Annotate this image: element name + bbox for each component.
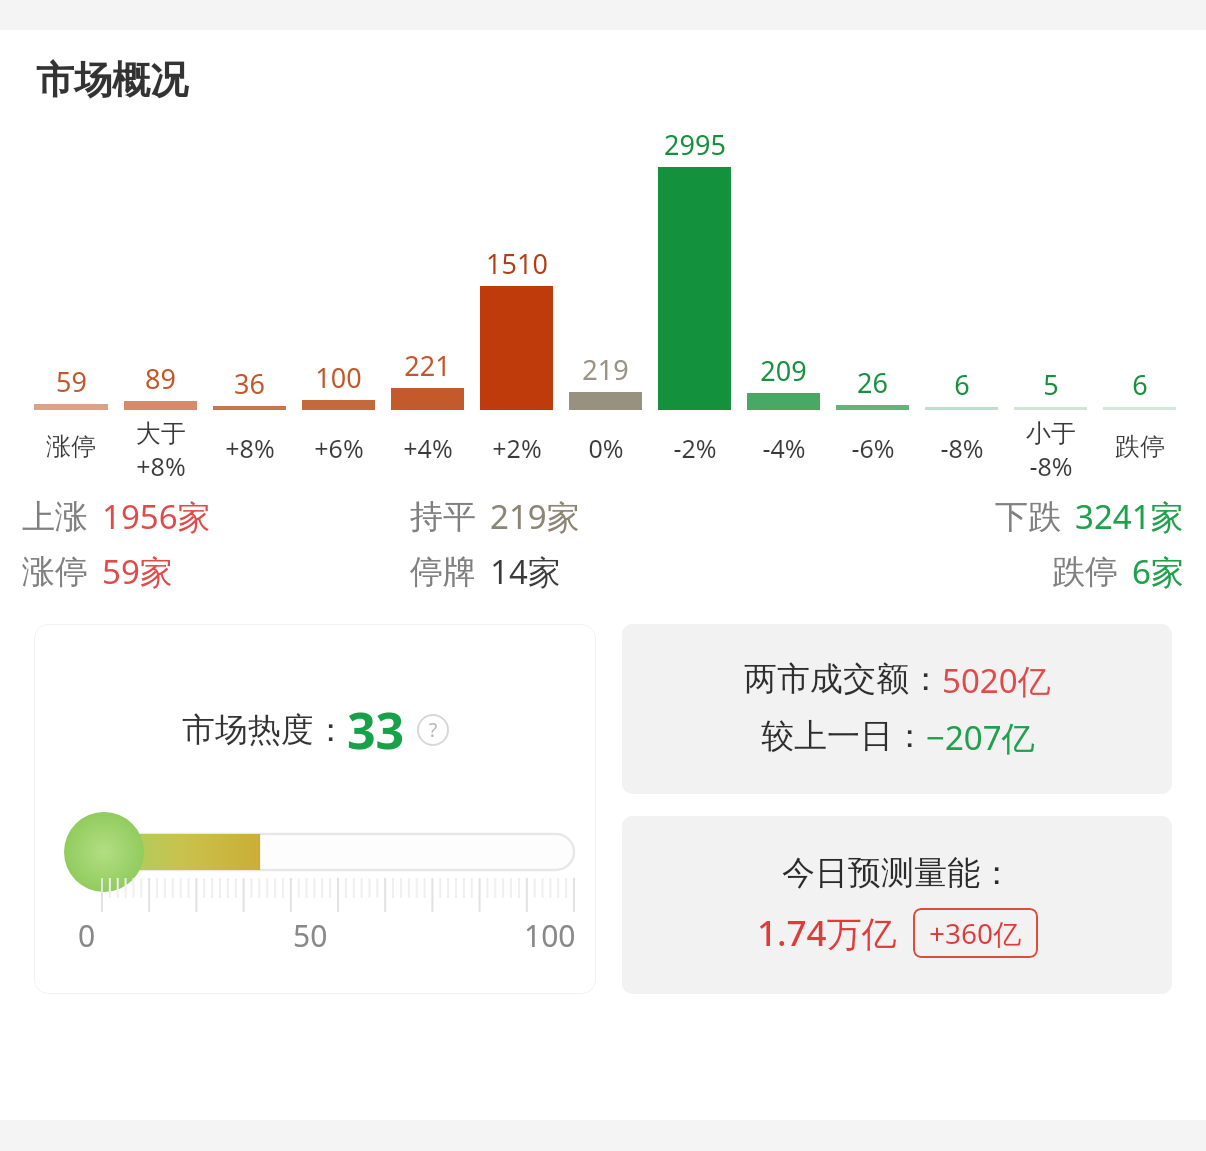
staticText: 0%: [588, 431, 624, 465]
staticText: 219家: [490, 494, 580, 539]
staticText: 5020亿: [942, 658, 1051, 703]
staticText: 5: [1043, 366, 1059, 403]
staticText: +8%: [136, 449, 186, 478]
staticText: 209: [760, 352, 807, 389]
staticText: 持平: [410, 496, 476, 538]
staticText: 6: [954, 366, 970, 403]
button[interactable]: 停牌: [410, 549, 797, 594]
staticText: -6%: [851, 431, 895, 465]
button[interactable]: 下跌: [797, 494, 1184, 539]
staticText: 涨停: [46, 431, 96, 462]
staticText: 221: [404, 347, 451, 384]
staticText: +360亿: [929, 914, 1022, 952]
staticText: 26: [857, 364, 888, 401]
staticText: 今日预测量能：: [782, 852, 1013, 894]
staticText: 59家: [102, 549, 173, 594]
staticText: 3241家: [1075, 494, 1184, 539]
staticText: −207亿: [926, 715, 1035, 760]
staticText: 下跌: [995, 496, 1061, 538]
button[interactable]: 两市成交额：: [622, 624, 1172, 794]
staticText: 33: [347, 696, 405, 764]
button[interactable]: 今日预测量能：: [622, 816, 1172, 994]
staticText: 市场热度：: [182, 709, 347, 751]
staticText: +4%: [403, 431, 453, 465]
staticText: 100: [315, 359, 362, 396]
staticText: 100: [524, 915, 576, 956]
staticText: 89: [145, 360, 176, 397]
staticText: 市场概况: [36, 56, 188, 104]
staticText: +2%: [492, 431, 542, 465]
button[interactable]: 市场热度：: [34, 624, 596, 994]
staticText: +8%: [225, 431, 275, 465]
staticText: 6家: [1132, 549, 1184, 594]
staticText: 大于: [136, 418, 186, 449]
button[interactable]: +360亿: [929, 914, 1022, 952]
button[interactable]: 持平: [410, 494, 797, 539]
staticText: 跌停: [1052, 551, 1118, 593]
staticText: 1510: [486, 245, 548, 282]
button[interactable]: 0: [34, 790, 596, 960]
staticText: 停牌: [410, 551, 476, 593]
staticText: 0: [78, 915, 96, 956]
staticText: 14家: [490, 549, 561, 594]
staticText: 小于: [1026, 418, 1076, 449]
staticText: ?: [429, 717, 438, 743]
button[interactable]: 上涨: [22, 494, 410, 539]
staticText: -8%: [1029, 449, 1073, 478]
staticText: 涨停: [22, 551, 88, 593]
staticText: +6%: [314, 431, 364, 465]
staticText: -8%: [940, 431, 984, 465]
staticText: 较上一日：: [761, 715, 926, 757]
staticText: 50: [293, 915, 328, 956]
staticText: 59: [56, 363, 87, 400]
staticText: 两市成交额：: [744, 658, 942, 700]
staticText: 6: [1132, 366, 1148, 403]
staticText: 1.74万亿: [757, 909, 897, 957]
staticText: 上涨: [22, 496, 88, 538]
staticText: -2%: [673, 431, 717, 465]
staticText: -4%: [762, 431, 806, 465]
button[interactable]: 涨停: [22, 549, 410, 594]
staticText: 2995: [664, 126, 726, 163]
button[interactable]: 帮助: [417, 714, 449, 746]
staticText: 219: [582, 351, 629, 388]
button[interactable]: 跌停: [797, 549, 1184, 594]
staticText: 1956家: [102, 494, 211, 539]
staticText: 36: [234, 365, 265, 402]
staticText: 跌停: [1115, 431, 1165, 462]
